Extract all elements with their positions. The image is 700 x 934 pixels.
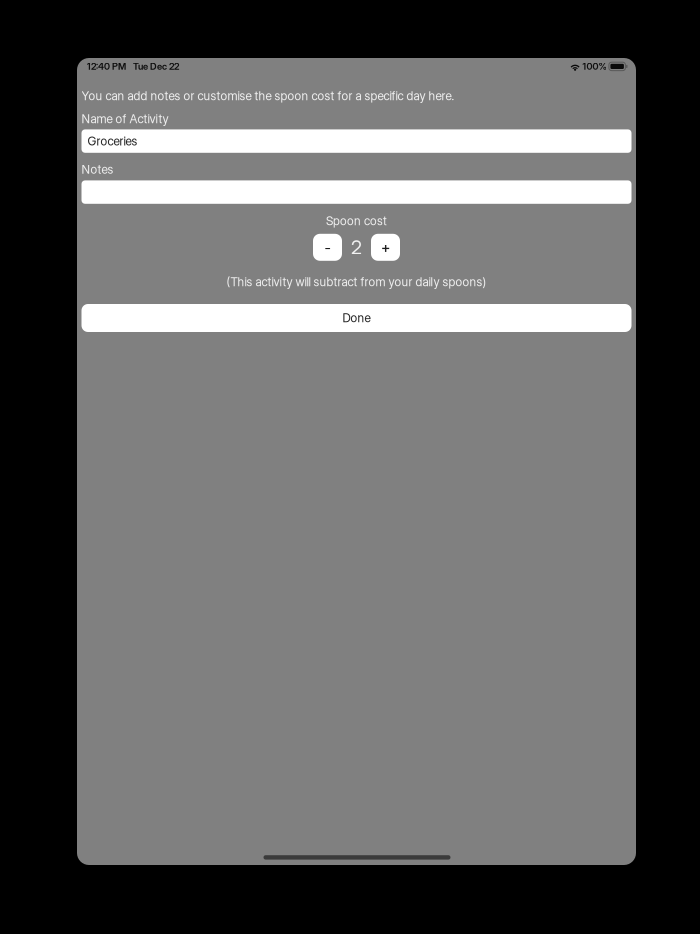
staticText: You can add notes or customise the spoon… (81, 88, 454, 103)
staticText: Name of Activity (81, 111, 168, 126)
button[interactable]: Notes (81, 180, 631, 204)
staticText: + (381, 238, 390, 256)
button[interactable]: Done (81, 304, 631, 332)
staticText: Done (342, 311, 370, 325)
button[interactable]: Name of Activity (81, 129, 631, 153)
button[interactable]: Decrease spoon cost (313, 234, 342, 261)
staticText: 100% (582, 61, 606, 72)
staticText: Spoon cost (326, 213, 387, 228)
staticText: 2 (351, 236, 362, 259)
staticText: - (324, 238, 330, 256)
staticText: Notes (81, 162, 113, 176)
staticText: Tue Dec 22 (133, 61, 179, 72)
staticText: 12:40 PM (87, 61, 126, 72)
staticText: Groceries (87, 134, 137, 148)
button[interactable]: Increase spoon cost (371, 234, 400, 261)
staticText: (This activity will subtract from your d… (226, 274, 486, 289)
